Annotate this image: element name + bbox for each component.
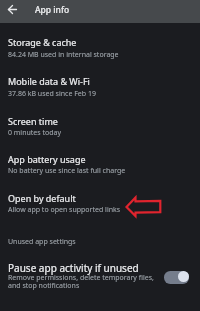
button[interactable]: Storage & cache: [0, 36, 200, 74]
button[interactable]: App info: [0, 0, 200, 23]
staticText: 84.24 MB used in internal storage: [8, 50, 119, 60]
button[interactable]: Mobile data & Wi-Fi: [0, 75, 200, 113]
staticText: 0 minutes today: [8, 128, 62, 138]
button[interactable]: App battery usage: [0, 153, 200, 191]
button[interactable]: [164, 271, 189, 284]
staticText: Pause app activity if unused: [8, 261, 139, 275]
staticText: Screen time: [8, 115, 58, 127]
staticText: No battery use since last full charge: [8, 166, 126, 176]
staticText: Storage & cache: [8, 36, 77, 48]
staticText: App info: [35, 4, 70, 16]
staticText: Open by default: [8, 192, 76, 204]
staticText: Mobile data & Wi-Fi: [8, 75, 90, 87]
staticText: App battery usage: [8, 153, 86, 165]
staticText: Allow app to open supported links: [8, 205, 121, 215]
button[interactable]: Screen time: [0, 115, 200, 153]
button[interactable]: Open by default: [0, 192, 200, 230]
button[interactable]: Pause app activity if unused: [0, 259, 200, 303]
staticText: Remove permissions, delete temporary fil…: [8, 273, 154, 283]
staticText: 37.86 kB used since Feb 19: [8, 89, 96, 99]
staticText: Unused app settings: [8, 237, 76, 247]
staticText: and stop notifications: [8, 281, 80, 291]
